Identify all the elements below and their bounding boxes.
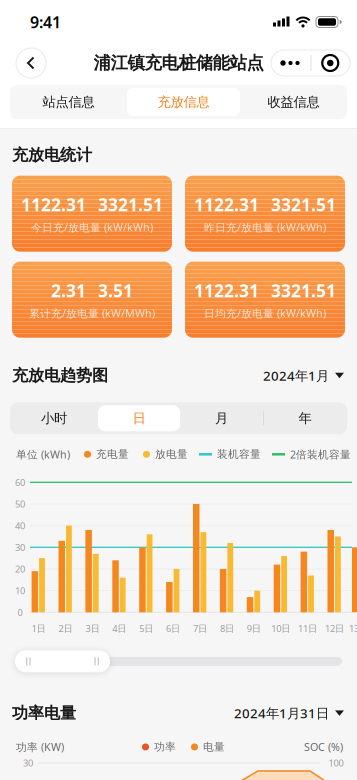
staticText: 今日充/放电量 (kW/kWh) (31, 220, 153, 234)
staticText: 9:41 (30, 11, 61, 33)
staticText: 8日 (220, 622, 234, 634)
button[interactable]: Zoom range (15, 650, 110, 672)
staticText: 3321.51 (98, 193, 163, 216)
button[interactable]: More (271, 50, 310, 76)
staticText: 11日 (298, 622, 317, 634)
button[interactable]: 月 (180, 402, 263, 434)
button[interactable]: 站点信息 (10, 85, 127, 119)
staticText: 100 (328, 757, 343, 769)
staticText: 3321.51 (271, 193, 336, 216)
staticText: 月 (215, 410, 228, 426)
staticText: 充放电统计 (12, 145, 92, 165)
staticText: 充放电趋势图 (12, 366, 108, 385)
staticText: 2日 (58, 622, 72, 634)
staticText: 30 (23, 757, 33, 769)
staticText: 2.31 (51, 279, 86, 302)
staticText: 20 (15, 563, 25, 575)
staticText: 功率电量 (12, 703, 76, 723)
staticText: 5日 (139, 622, 153, 634)
staticText: 13 (349, 622, 357, 634)
staticText: 昨日充/放电量 (kW/kWh) (204, 220, 326, 234)
button[interactable]: 年 (263, 402, 347, 434)
staticText: 0 (17, 606, 22, 618)
staticText: 12日 (325, 622, 344, 634)
staticText: 累计充/放电量 (kW/MWh) (29, 306, 155, 320)
staticText: 收益信息 (267, 94, 319, 110)
staticText: 40 (15, 519, 25, 532)
staticText: 3日 (85, 622, 99, 634)
button[interactable]: 小时 (10, 402, 98, 434)
staticText: 单位 (kWh) (16, 447, 70, 461)
staticText: 站点信息 (42, 94, 94, 110)
staticText: 功率 (KW) (16, 740, 64, 754)
staticText: 装机容量 (217, 448, 261, 461)
staticText: 30 (15, 541, 25, 553)
button[interactable]: 充放信息 (127, 88, 240, 116)
staticText: 1日 (32, 622, 46, 634)
button[interactable]: 2024年1月31日 (234, 704, 344, 722)
staticText: 功率 (154, 740, 176, 753)
staticText: 50 (15, 498, 25, 510)
staticText: 1122.31 (194, 279, 259, 302)
button[interactable]: 收益信息 (240, 85, 347, 119)
staticText: 充电量 (96, 448, 129, 461)
staticText: 充放信息 (157, 94, 209, 110)
staticText: 3321.51 (271, 279, 336, 302)
staticText: 2024年1月31日 (234, 704, 329, 722)
button[interactable]: 日 (98, 405, 180, 431)
staticText: 浦江镇充电桩储能站点 (93, 52, 263, 74)
button[interactable]: 2024年1月 (263, 367, 344, 384)
staticText: 60 (15, 476, 25, 488)
staticText: 9日 (247, 622, 261, 634)
staticText: 6日 (166, 622, 180, 634)
staticText: 1122.31 (21, 193, 86, 216)
staticText: 日 (132, 410, 145, 426)
staticText: 4日 (112, 622, 126, 634)
staticText: 日均充/放电量 (kW/kWh) (204, 306, 326, 320)
staticText: 年 (298, 410, 311, 426)
button[interactable]: Close (310, 50, 350, 76)
staticText: 2倍装机容量 (290, 447, 351, 461)
staticText: 3.51 (98, 279, 133, 302)
staticText: 10 (15, 584, 25, 597)
button[interactable]: Back (16, 48, 46, 78)
staticText: 小时 (41, 410, 67, 426)
staticText: 7日 (193, 622, 207, 634)
staticText: 放电量 (155, 448, 188, 461)
staticText: 1122.31 (194, 193, 259, 216)
staticText: 10日 (271, 622, 290, 634)
staticText: SOC (%) (304, 740, 343, 754)
staticText: 2024年1月 (263, 367, 329, 384)
staticText: 电量 (203, 740, 225, 753)
